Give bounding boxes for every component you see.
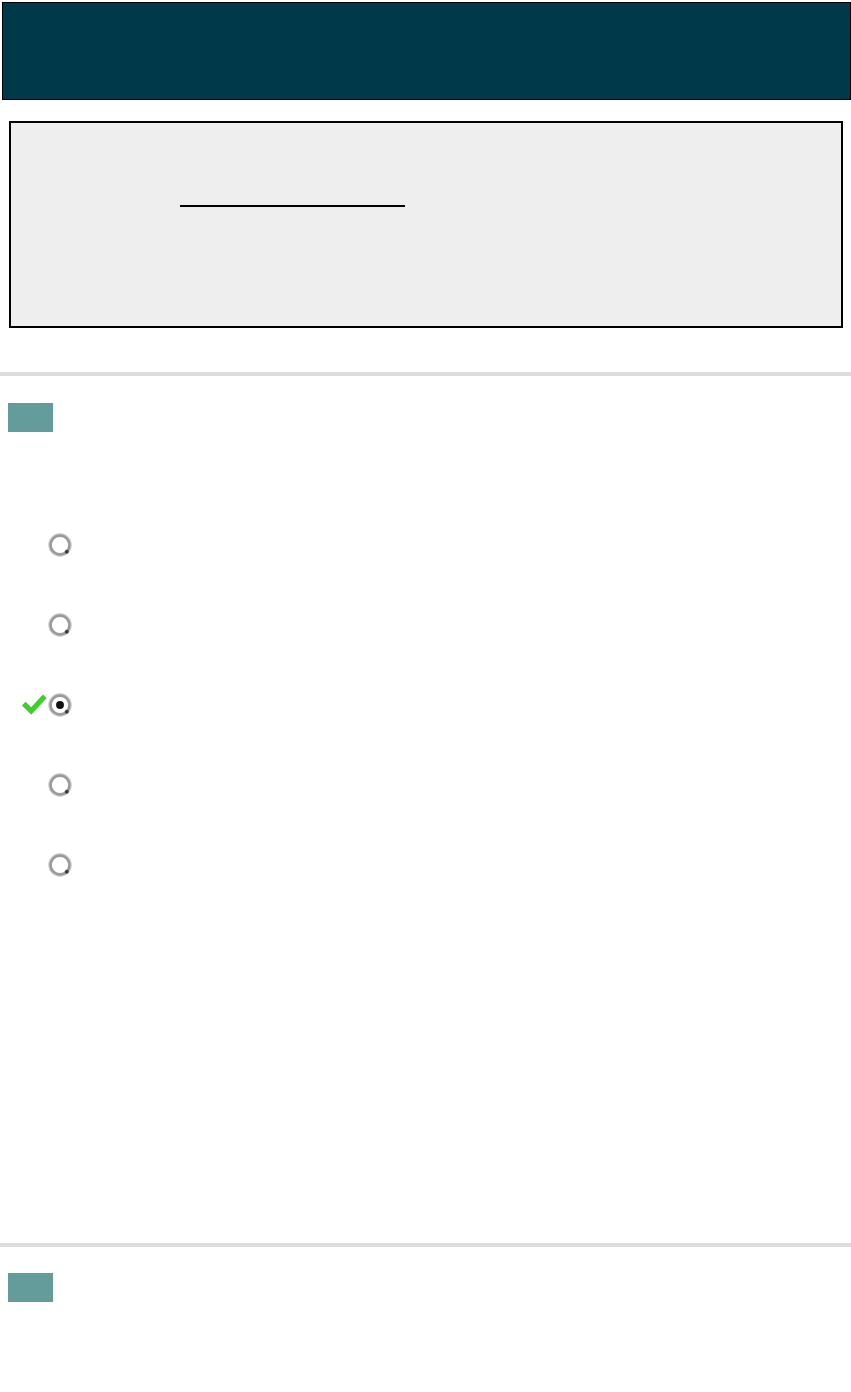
button[interactable]: Answer option xyxy=(0,763,851,843)
button[interactable]: Answer option xyxy=(0,603,851,683)
button[interactable]: Answer option xyxy=(0,523,851,603)
button[interactable]: Header xyxy=(2,2,851,100)
button[interactable]: Selected answer xyxy=(0,683,851,763)
button[interactable]: Link xyxy=(180,183,405,207)
button[interactable]: Answer option xyxy=(0,843,851,923)
